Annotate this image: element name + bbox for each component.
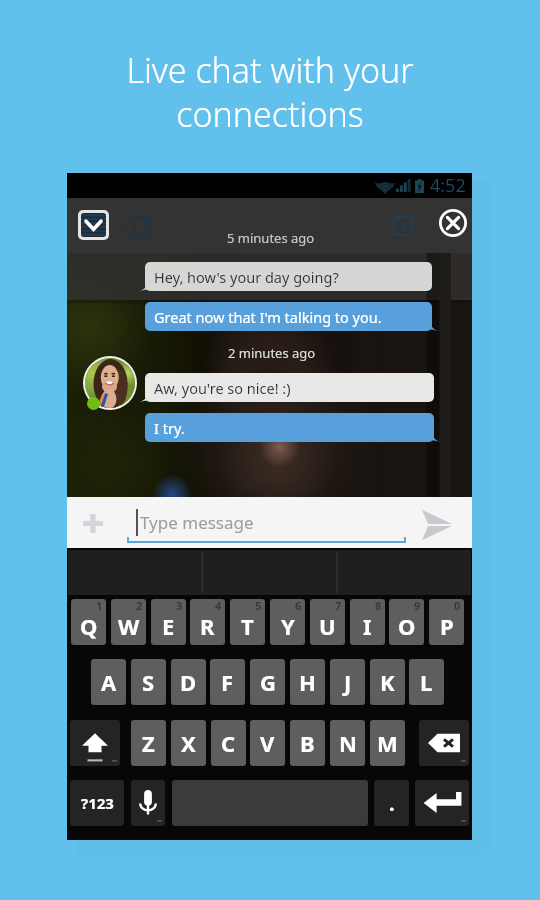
button[interactable]: X [171, 720, 206, 766]
button[interactable]: C [211, 720, 246, 766]
staticText: I try. [154, 418, 185, 438]
button[interactable]: 5 [230, 599, 265, 645]
button[interactable]: Snooze [125, 216, 152, 238]
button[interactable]: 8 [350, 599, 385, 645]
staticText: I [363, 611, 372, 641]
staticText: 9 [414, 599, 421, 613]
staticText: Live chat with your connections [0, 47, 540, 137]
button[interactable]: Voice input [131, 780, 165, 826]
staticText: 4 [215, 599, 222, 613]
staticText: B [300, 728, 315, 758]
staticText: V [260, 728, 275, 758]
staticText: 4:52 [430, 173, 466, 198]
button[interactable]: S [131, 659, 166, 705]
button[interactable]: Hey, how's your day going? [145, 262, 432, 291]
staticText: Y [281, 611, 295, 641]
button[interactable]: . [374, 780, 409, 826]
staticText: 2 [136, 599, 143, 613]
button[interactable]: 1 [71, 599, 106, 645]
staticText: 0 [454, 599, 461, 613]
button[interactable]: D [171, 659, 206, 705]
button[interactable]: Close [439, 209, 467, 237]
button[interactable]: Add attachment [83, 514, 103, 533]
button[interactable]: Send [421, 509, 453, 541]
staticText: K [380, 667, 395, 697]
staticText: Q [80, 611, 98, 641]
staticText: W [118, 611, 140, 641]
staticText: F [221, 667, 234, 697]
staticText: P [440, 611, 454, 641]
button[interactable]: ?123 [70, 780, 124, 826]
button[interactable]: A [91, 659, 126, 705]
button[interactable]: 2 [111, 599, 146, 645]
button[interactable]: B [290, 720, 325, 766]
staticText: X [181, 728, 196, 758]
button[interactable]: 6 [270, 599, 305, 645]
button[interactable]: 7 [310, 599, 345, 645]
staticText: 6 [295, 599, 302, 613]
staticText: 8 [375, 599, 382, 613]
staticText: C [221, 728, 236, 758]
button[interactable]: Shift [70, 720, 120, 766]
staticText: 3 [176, 599, 183, 613]
button[interactable]: Enter [415, 780, 469, 826]
button[interactable]: J [330, 659, 365, 705]
button[interactable]: 4 [190, 599, 225, 645]
button[interactable]: 3 [151, 599, 186, 645]
staticText: H [299, 667, 316, 697]
staticText: L [420, 667, 433, 697]
button[interactable]: V [250, 720, 285, 766]
staticText: M [377, 728, 398, 758]
button[interactable]: Expand conversation [81, 213, 106, 237]
staticText: 7 [335, 599, 342, 613]
button[interactable]: N [330, 720, 365, 766]
staticText: 5 [255, 599, 262, 613]
staticText: G [260, 667, 276, 697]
button[interactable]: K [370, 659, 405, 705]
staticText: Z [142, 728, 155, 758]
button[interactable]: I try. [145, 413, 434, 442]
staticText: Type message [140, 511, 254, 534]
button[interactable]: H [290, 659, 325, 705]
staticText: A [101, 667, 117, 697]
staticText: E [162, 611, 175, 641]
staticText: N [339, 728, 357, 758]
button[interactable]: M [370, 720, 405, 766]
button[interactable]: Z [131, 720, 166, 766]
button[interactable]: Aw, you're so nice! :) [145, 373, 434, 402]
staticText: R [200, 611, 215, 641]
staticText: D [180, 667, 197, 697]
staticText: ?123 [81, 793, 114, 813]
button[interactable]: F [210, 659, 245, 705]
staticText: Hey, how's your day going? [154, 267, 339, 287]
button[interactable]: L [409, 659, 444, 705]
button[interactable]: Backspace [419, 720, 469, 766]
staticText: 1 [96, 599, 103, 613]
button[interactable]: G [250, 659, 285, 705]
staticText: J [344, 667, 352, 697]
staticText: 2 minutes ago [228, 344, 316, 362]
button[interactable]: Great now that I'm talking to you. [145, 302, 432, 331]
staticText: T [241, 611, 254, 641]
button[interactable]: 9 [389, 599, 424, 645]
button[interactable]: 0 [429, 599, 464, 645]
staticText: U [319, 611, 336, 641]
staticText: Aw, you're so nice! :) [154, 378, 291, 398]
button[interactable]: Flash [393, 216, 413, 236]
staticText: 5 minutes ago [227, 229, 315, 247]
staticText: . [389, 790, 395, 817]
staticText: Great now that I'm talking to you. [154, 307, 382, 327]
staticText: z [133, 220, 138, 234]
staticText: O [398, 611, 416, 641]
staticText: S [142, 667, 155, 697]
